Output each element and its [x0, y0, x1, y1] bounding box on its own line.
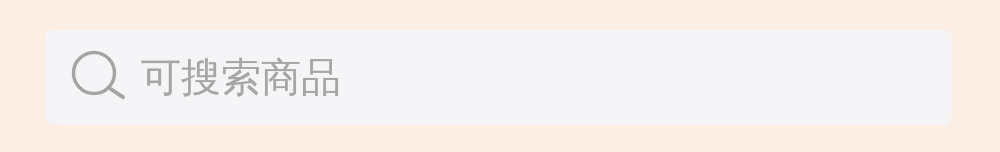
staticText: 可搜索商品	[141, 52, 341, 102]
other: Search	[54, 33, 134, 113]
button[interactable]: Search	[45, 30, 952, 125]
